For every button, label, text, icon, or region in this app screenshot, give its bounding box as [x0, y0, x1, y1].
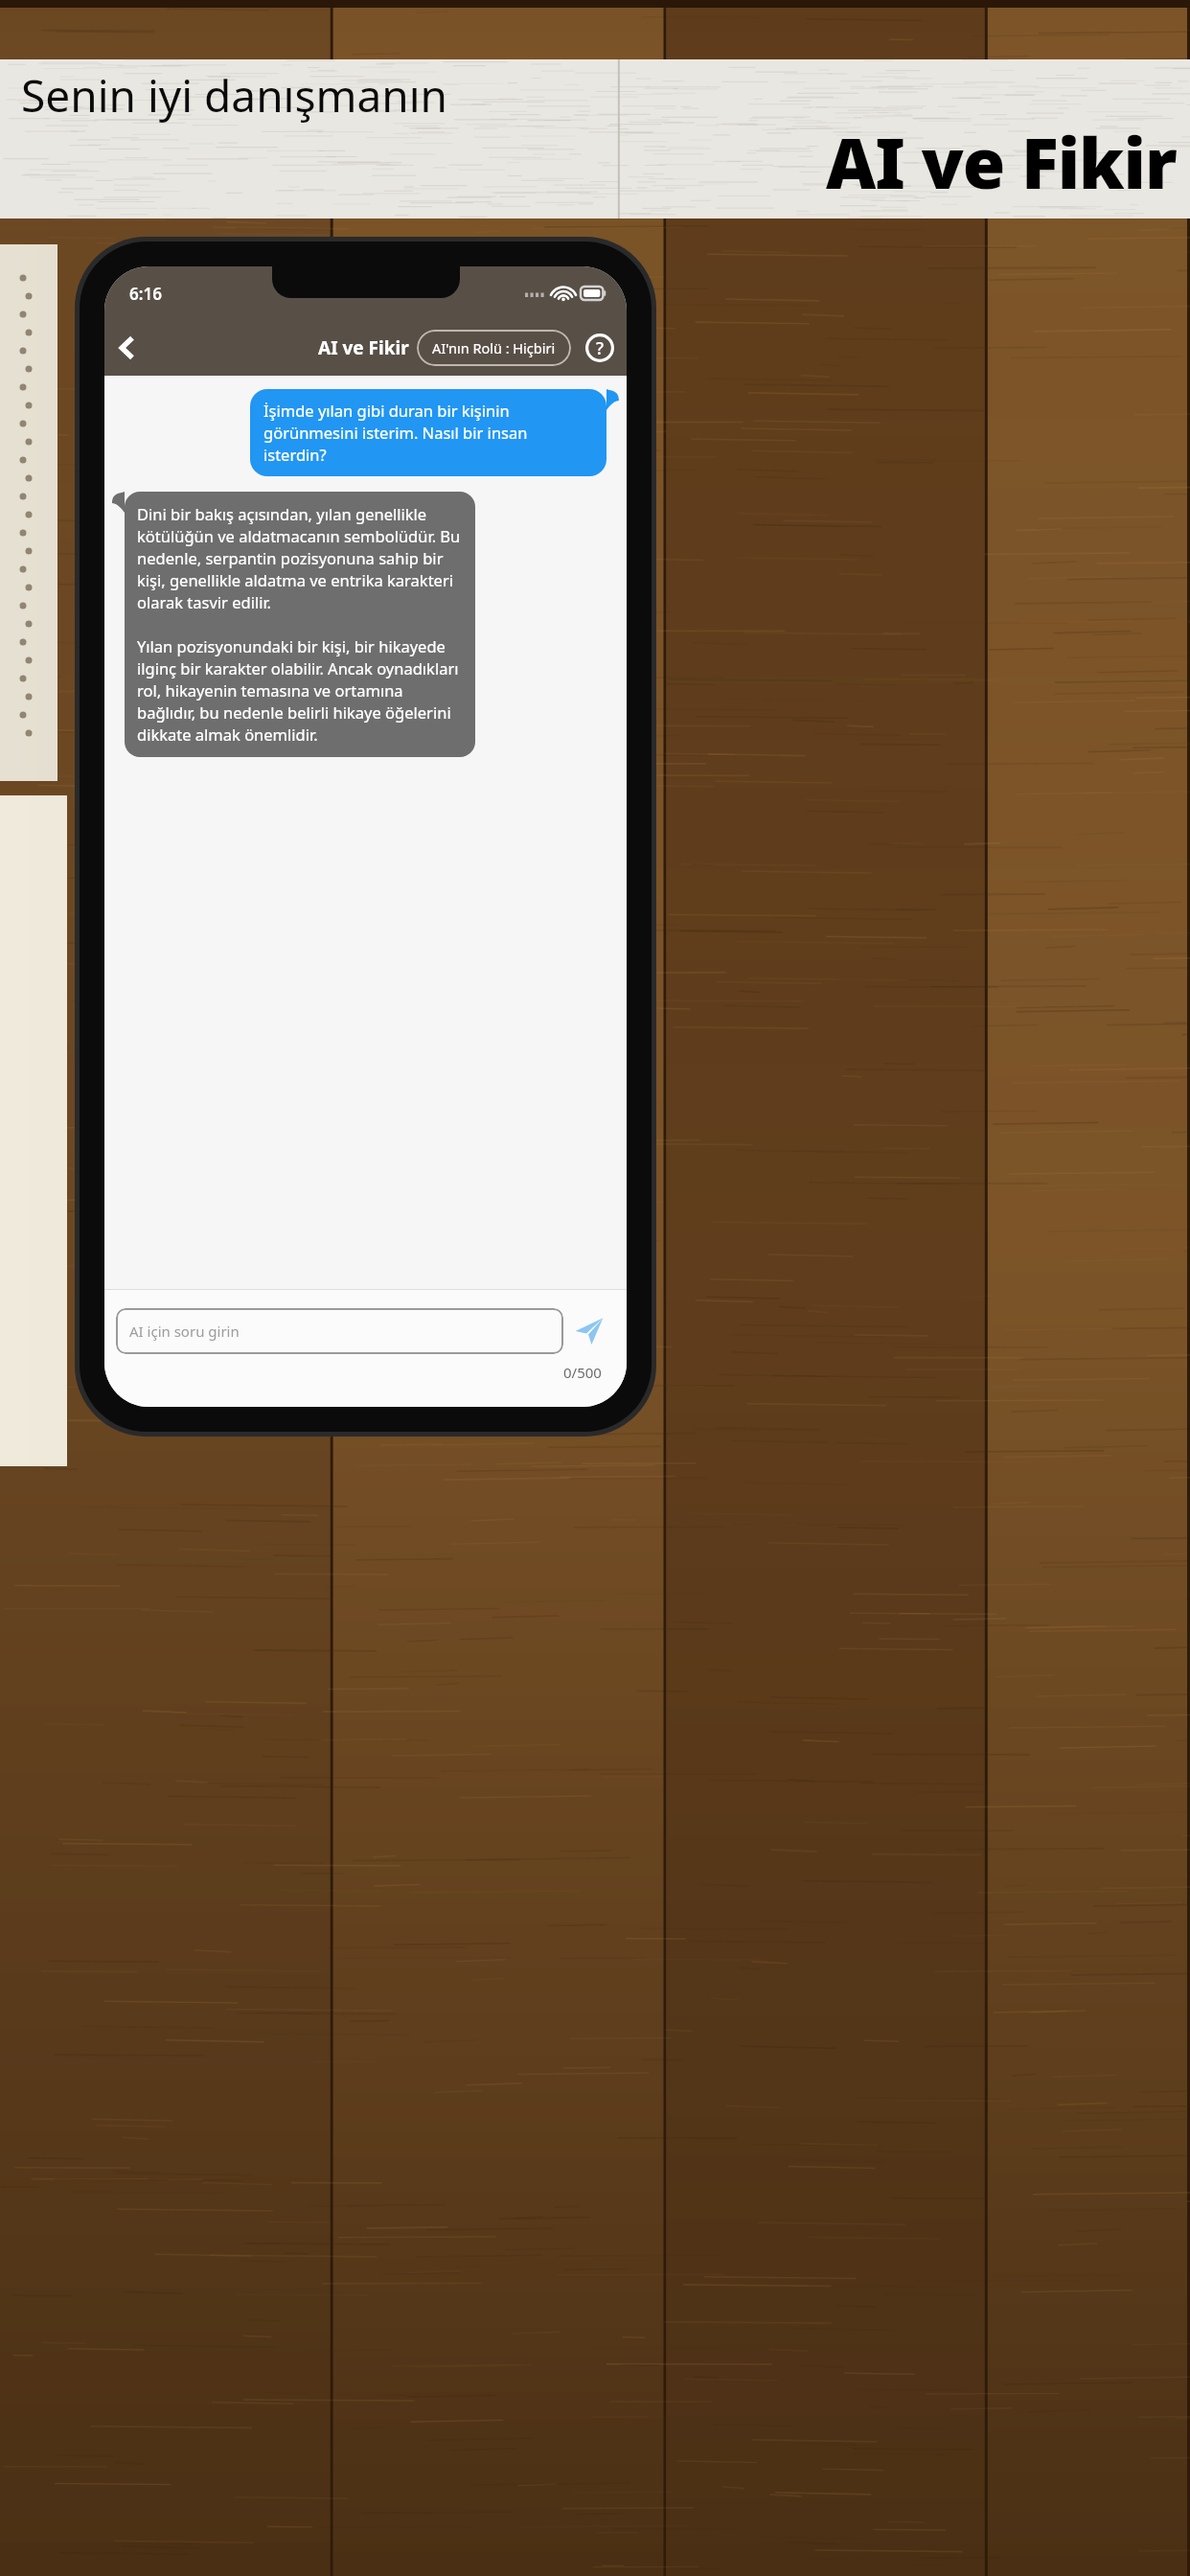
- button[interactable]: Dini bir bakış açısından, yılan genellik…: [125, 492, 475, 757]
- button[interactable]: AI için soru girin: [116, 1308, 563, 1354]
- staticText: Senin iyi danışmanın: [21, 65, 448, 126]
- staticText: ?: [596, 336, 605, 360]
- staticText: 6:16: [129, 283, 162, 305]
- staticText: AI için soru girin: [129, 1322, 240, 1341]
- button[interactable]: Help: [581, 329, 619, 367]
- button[interactable]: İşimde yılan gibi duran bir kişinin görü…: [250, 389, 606, 476]
- button[interactable]: AI'nın Rolü : Hiçbiri: [417, 330, 571, 366]
- staticText: AI'nın Rolü : Hiçbiri: [432, 338, 556, 357]
- button[interactable]: Send: [563, 1305, 615, 1357]
- staticText: İşimde yılan gibi duran bir kişinin görü…: [263, 400, 593, 466]
- button[interactable]: Back: [104, 326, 149, 370]
- staticText: AI ve Fikir: [826, 115, 1177, 209]
- staticText: 0/500: [563, 1363, 602, 1382]
- staticText: Dini bir bakış açısından, yılan genellik…: [137, 503, 463, 746]
- staticText: AI ve Fikir: [318, 335, 409, 360]
